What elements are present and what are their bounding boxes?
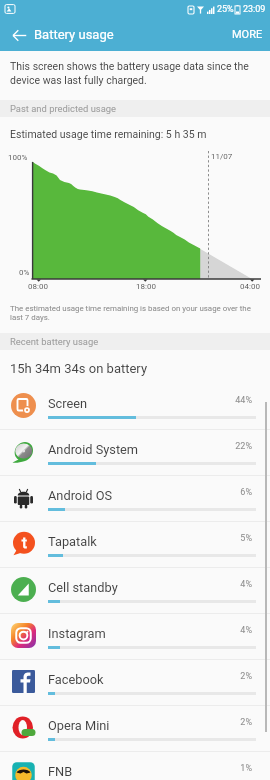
staticText: 6%: [222, 487, 252, 498]
staticText: 4%: [222, 625, 252, 636]
staticText: 23:09: [243, 4, 266, 15]
staticText: 22%: [222, 441, 252, 452]
staticText: Tapatalk: [48, 534, 97, 549]
staticText: 44%: [222, 395, 252, 406]
button[interactable]: Opera Mini: [0, 706, 270, 752]
staticText: 11/07: [211, 152, 233, 161]
staticText: 5%: [222, 533, 252, 544]
button[interactable]: Android System: [0, 430, 270, 476]
staticText: Recent battery usage: [10, 336, 99, 347]
button[interactable]: Navigate up: [7, 23, 31, 47]
button[interactable]: FNB: [0, 752, 270, 780]
staticText: 08:00: [18, 282, 58, 291]
button[interactable]: MORE: [222, 21, 270, 48]
staticText: 2%: [222, 717, 252, 728]
staticText: t: [22, 534, 27, 552]
staticText: 25%: [217, 4, 234, 15]
staticText: Cell standby: [48, 580, 118, 595]
staticText: 2%: [222, 671, 252, 682]
staticText: This screen shows the battery usage data…: [10, 60, 254, 87]
staticText: The estimated usage time remaining is ba…: [10, 304, 252, 322]
button[interactable]: Screen: [0, 384, 270, 430]
staticText: Instagram: [48, 626, 106, 641]
staticText: 15h 34m 34s on battery: [10, 361, 148, 376]
button[interactable]: Instagram: [0, 614, 270, 660]
staticText: 1%: [222, 763, 252, 774]
staticText: 04:00: [230, 282, 270, 291]
staticText: 100%: [8, 153, 28, 162]
button[interactable]: Android OS: [0, 476, 270, 522]
staticText: Battery usage: [34, 27, 114, 42]
staticText: 0%: [19, 268, 30, 277]
staticText: Android OS: [48, 488, 113, 503]
staticText: Screen: [48, 396, 88, 411]
staticText: 18:00: [126, 282, 166, 291]
staticText: MORE: [232, 28, 263, 41]
staticText: Android System: [48, 442, 139, 457]
staticText: 4%: [222, 579, 252, 590]
button[interactable]: Cell standby: [0, 568, 270, 614]
staticText: Opera Mini: [48, 718, 110, 733]
staticText: Estimated usage time remaining: 5 h 35 m: [10, 128, 207, 140]
button[interactable]: Facebook: [0, 660, 270, 706]
staticText: FNB: [48, 764, 73, 779]
staticText: Facebook: [48, 672, 104, 687]
button[interactable]: t: [0, 522, 270, 568]
staticText: Past and predicted usage: [10, 103, 117, 114]
